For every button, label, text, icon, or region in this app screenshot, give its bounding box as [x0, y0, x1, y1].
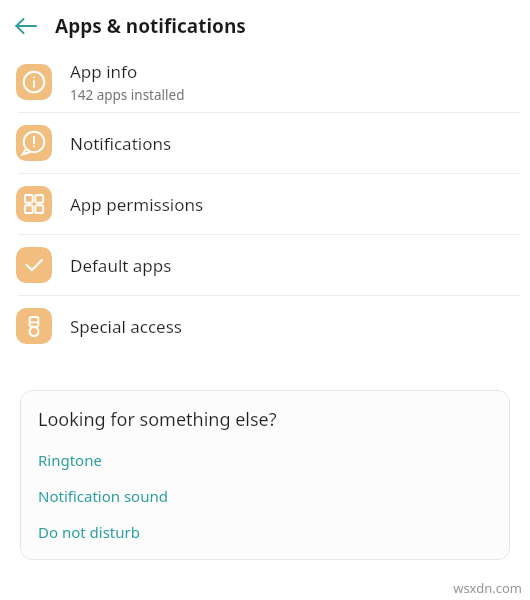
- button[interactable]: Ringtone: [20, 442, 510, 478]
- staticText: Notification sound: [38, 486, 168, 506]
- staticText: Special access: [70, 315, 182, 338]
- button[interactable]: App info: [0, 52, 530, 112]
- button[interactable]: Special access: [0, 296, 530, 356]
- staticText: Apps & notifications: [55, 13, 246, 39]
- staticText: Default apps: [70, 254, 172, 277]
- staticText: wsxdn.com: [453, 579, 522, 597]
- button[interactable]: Notifications: [0, 113, 530, 173]
- staticText: App permissions: [70, 193, 204, 216]
- staticText: Do not disturb: [38, 522, 140, 542]
- button[interactable]: Back: [8, 8, 44, 44]
- button[interactable]: Do not disturb: [20, 514, 510, 550]
- button[interactable]: Default apps: [0, 235, 530, 295]
- button[interactable]: App permissions: [0, 174, 530, 234]
- staticText: 142 apps installed: [70, 86, 185, 104]
- button[interactable]: Notification sound: [20, 478, 510, 514]
- staticText: Looking for something else?: [38, 407, 277, 432]
- staticText: Notifications: [70, 132, 172, 155]
- staticText: App info: [70, 60, 138, 83]
- staticText: Ringtone: [38, 450, 102, 470]
